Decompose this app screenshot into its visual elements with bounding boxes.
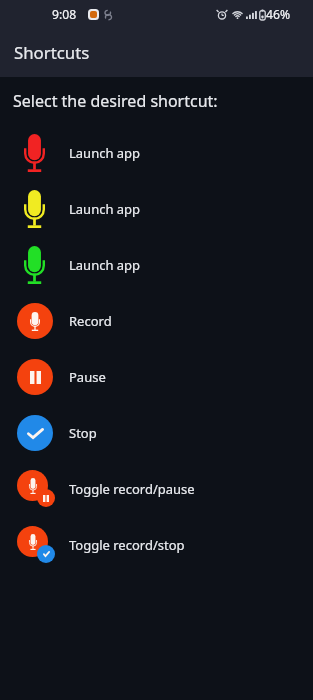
staticText: Record bbox=[69, 312, 112, 330]
staticText: Toggle record/pause bbox=[69, 480, 195, 498]
staticText: Pause bbox=[69, 368, 106, 386]
button[interactable]: Stop bbox=[0, 405, 313, 461]
button[interactable]: Launch app bbox=[0, 125, 313, 181]
button[interactable]: Record bbox=[0, 293, 313, 349]
button[interactable]: Toggle record/stop bbox=[0, 517, 313, 573]
staticText: Toggle record/stop bbox=[69, 536, 185, 554]
staticText: Select the desired shortcut: bbox=[13, 90, 218, 112]
button[interactable]: Pause bbox=[0, 349, 313, 405]
staticText: Launch app bbox=[69, 144, 141, 162]
staticText: Launch app bbox=[69, 256, 141, 274]
button[interactable]: Launch app bbox=[0, 237, 313, 293]
staticText: 46% bbox=[266, 6, 291, 23]
staticText: Shortcuts bbox=[14, 41, 90, 64]
button[interactable]: Toggle record/pause bbox=[0, 461, 313, 517]
staticText: Launch app bbox=[69, 200, 141, 218]
button[interactable]: Launch app bbox=[0, 181, 313, 237]
staticText: Stop bbox=[69, 424, 97, 442]
staticText: 9:08 bbox=[52, 6, 77, 23]
